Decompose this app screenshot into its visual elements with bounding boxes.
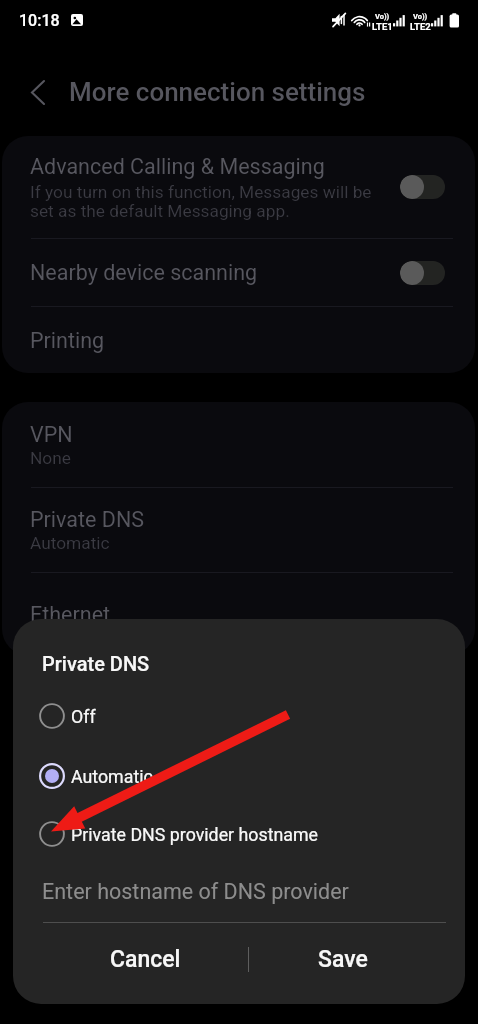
staticText: Advanced Calling & Messaging [30, 154, 325, 179]
staticText: LTE2 [410, 21, 431, 32]
staticText: Vo)) [375, 12, 390, 21]
staticText: Automatic [71, 766, 153, 787]
staticText: Off [71, 706, 96, 727]
staticText: Private DNS [30, 507, 145, 532]
button[interactable]: Cancel [60, 930, 230, 988]
staticText: If you turn on this function, Messages w… [30, 182, 372, 221]
button[interactable]: Save [258, 930, 428, 988]
button[interactable]: Automatic [13, 750, 465, 802]
button[interactable]: Advanced Calling & Messaging [2, 136, 475, 238]
staticText: Cancel [110, 946, 181, 973]
staticText: Private DNS [42, 652, 150, 675]
staticText: LTE1 [372, 21, 393, 32]
staticText: Ethernet [30, 602, 111, 627]
button[interactable]: Nearby device scanning [2, 239, 475, 306]
button[interactable]: Off [13, 690, 465, 742]
staticText: Enter hostname of DNS provider [42, 879, 349, 904]
button[interactable]: Printing [2, 307, 475, 373]
staticText: None [30, 448, 71, 468]
staticText: Printing [30, 328, 105, 353]
button[interactable]: VPN [2, 402, 475, 487]
button[interactable]: Back [18, 72, 58, 112]
staticText: Save [318, 946, 368, 973]
staticText: More connection settings [69, 77, 366, 107]
button[interactable]: Private DNS [2, 488, 475, 572]
button[interactable]: Toggle [400, 175, 445, 199]
button[interactable]: Private DNS provider hostname [13, 808, 465, 860]
staticText: VPN [30, 422, 73, 447]
staticText: Automatic [30, 533, 110, 553]
staticText: Vo)) [413, 12, 428, 21]
staticText: Private DNS provider hostname [71, 824, 319, 845]
button[interactable]: Toggle [400, 261, 445, 285]
button[interactable]: Ethernet [2, 573, 475, 655]
staticText: Nearby device scanning [30, 260, 400, 285]
button[interactable]: Enter hostname of DNS provider [13, 871, 465, 911]
staticText: 10:18 [19, 11, 60, 30]
